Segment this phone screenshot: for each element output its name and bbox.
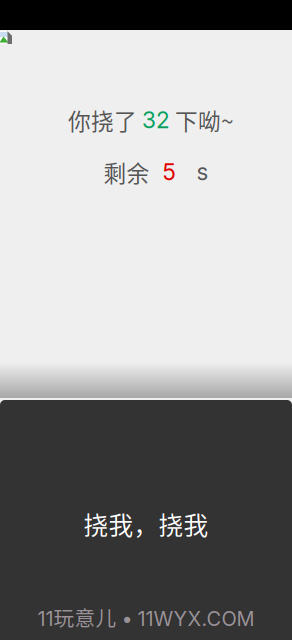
staticText: 挠我，挠我	[83, 506, 208, 542]
staticText: 32	[142, 106, 170, 134]
staticText: 剩余	[103, 156, 149, 188]
button[interactable]: 挠我，挠我	[0, 400, 292, 640]
staticText: 11WYX.COM	[137, 607, 254, 631]
staticText: 你挠了	[68, 104, 142, 136]
staticText: 11	[37, 607, 53, 631]
staticText: 下呦~	[170, 104, 234, 136]
staticText: •	[116, 607, 137, 631]
staticText: 玩意儿	[53, 602, 116, 632]
staticText: s	[196, 158, 208, 186]
staticText: 5	[162, 158, 175, 186]
